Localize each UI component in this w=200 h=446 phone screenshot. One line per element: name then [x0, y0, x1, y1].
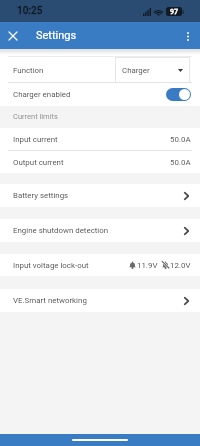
button[interactable]: Output current: [0, 151, 200, 173]
staticText: 50.0A: [170, 135, 191, 144]
staticText: Charger enabled: [13, 90, 71, 99]
staticText: Input current: [13, 135, 58, 144]
staticText: Charger: [122, 66, 150, 75]
staticText: Engine shutdown detection: [13, 226, 109, 235]
staticText: Battery settings: [13, 191, 69, 200]
staticText: 12.0V: [170, 261, 191, 270]
staticText: Output current: [13, 158, 64, 167]
staticText: VE.Smart networking: [13, 296, 87, 305]
button[interactable]: Close: [4, 27, 22, 45]
staticText: Input voltage lock-out: [13, 261, 89, 270]
staticText: 11.9V: [137, 261, 158, 270]
staticText: Current limits: [13, 112, 58, 121]
button[interactable]: VE.Smart networking: [0, 289, 200, 312]
button[interactable]: Function: [0, 57, 200, 83]
staticText: 10:25: [17, 5, 43, 17]
staticText: Function: [13, 66, 44, 75]
button[interactable]: Input current: [0, 128, 200, 150]
button[interactable]: Charger enabled: [0, 83, 200, 106]
button[interactable]: More options: [179, 27, 197, 45]
button[interactable]: Battery settings: [0, 184, 200, 207]
button[interactable]: Input voltage lock-out: [0, 254, 200, 276]
staticText: 97: [170, 8, 178, 16]
staticText: 50.0A: [170, 158, 191, 167]
staticText: Settings: [36, 29, 77, 42]
button[interactable]: Engine shutdown detection: [0, 219, 200, 242]
